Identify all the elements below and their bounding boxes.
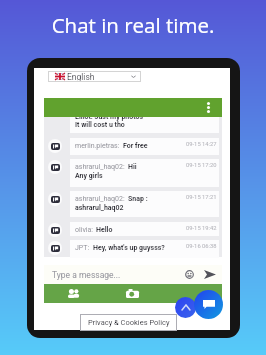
staticText: ashrarul_haq02 bbox=[75, 204, 124, 212]
staticText: Hii bbox=[128, 163, 137, 171]
button[interactable]: JPT: bbox=[70, 240, 219, 258]
staticText: It will cost u tho bbox=[75, 121, 125, 129]
staticText: Hello bbox=[96, 226, 113, 234]
staticText: Privacy & Cookies Policy bbox=[88, 318, 170, 327]
staticText: Elliot: Just my photos bbox=[75, 113, 144, 121]
staticText: Any girls bbox=[75, 172, 103, 180]
staticText: JPT: bbox=[75, 244, 90, 252]
button[interactable]: Open chat bbox=[194, 290, 223, 319]
staticText: olivia: bbox=[75, 226, 93, 234]
staticText: For free bbox=[123, 142, 148, 150]
staticText: 09-15 17:20 bbox=[186, 162, 217, 169]
button[interactable]: ashrarul_haq02: bbox=[70, 191, 219, 217]
other: Emoji bbox=[185, 270, 194, 279]
button[interactable]: olivia: bbox=[70, 222, 219, 236]
button[interactable]: More options bbox=[44, 98, 222, 117]
button[interactable]: Camera bbox=[103, 284, 161, 303]
staticText: 09-15 17:21 bbox=[186, 194, 217, 201]
staticText: Type a message... bbox=[52, 270, 121, 280]
staticText: ashrarul_haq02: bbox=[75, 163, 125, 171]
other: More options bbox=[207, 102, 210, 113]
other: Contacts bbox=[67, 289, 80, 298]
button[interactable]: English bbox=[48, 71, 141, 82]
button[interactable]: Expand chat heads bbox=[175, 297, 196, 318]
button[interactable]: Type a message... bbox=[44, 265, 222, 284]
staticText: Snap : bbox=[128, 195, 148, 203]
staticText: ashrarul_haq02: bbox=[75, 195, 125, 203]
button[interactable]: Privacy & Cookies Policy bbox=[80, 314, 177, 331]
staticText: Hey, what's up guysss? bbox=[93, 244, 165, 252]
button[interactable]: ashrarul_haq02: bbox=[70, 159, 219, 187]
staticText: English bbox=[67, 72, 95, 82]
staticText: 09-15 19:42 bbox=[186, 225, 217, 232]
staticText: Chat in real time. bbox=[0, 11, 266, 39]
button[interactable]: merlin.pietras: bbox=[70, 138, 219, 155]
button[interactable]: Contacts bbox=[44, 284, 103, 303]
other: Camera bbox=[126, 289, 139, 298]
staticText: 09-16 06:38 bbox=[186, 243, 217, 250]
other: Send bbox=[204, 270, 216, 279]
staticText: 09-15 14:27 bbox=[186, 141, 217, 148]
staticText: merlin.pietras: bbox=[75, 142, 120, 150]
